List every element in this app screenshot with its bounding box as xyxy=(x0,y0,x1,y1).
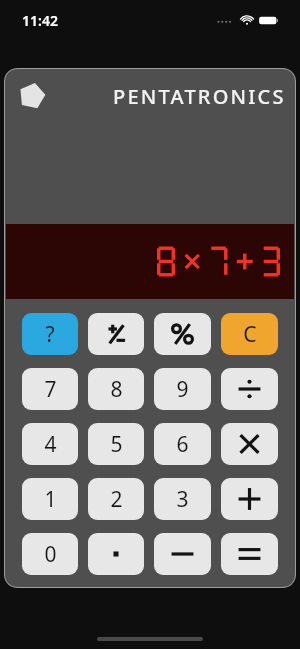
button[interactable]: Three xyxy=(154,478,211,520)
staticText: 3 xyxy=(176,485,189,514)
button[interactable]: Two xyxy=(88,478,144,520)
staticText: 4 xyxy=(44,430,57,459)
staticText: 8 xyxy=(110,375,123,404)
staticText: C xyxy=(243,320,257,349)
button[interactable]: Eight xyxy=(88,368,144,410)
staticText: 2 xyxy=(110,485,123,514)
staticText: 9 xyxy=(176,375,189,404)
staticText: 0 xyxy=(44,540,57,569)
staticText: PENTATRONICS xyxy=(113,83,286,110)
staticText: 6 xyxy=(176,430,189,459)
button[interactable]: Percent xyxy=(154,313,211,355)
button[interactable]: Decimal point xyxy=(88,533,144,575)
button[interactable]: Equals xyxy=(221,533,278,575)
button[interactable]: Nine xyxy=(154,368,211,410)
button[interactable]: Plus minus xyxy=(88,313,144,355)
button[interactable]: Seven xyxy=(22,368,78,410)
button[interactable]: Clear xyxy=(221,313,278,355)
staticText: 5 xyxy=(110,430,123,459)
button[interactable]: Divide xyxy=(221,368,278,410)
button[interactable]: Five xyxy=(88,423,144,465)
button[interactable]: Four xyxy=(22,423,78,465)
staticText: ? xyxy=(45,320,55,349)
other: Pentatronics logo xyxy=(18,82,46,110)
button[interactable]: Multiply xyxy=(221,423,278,465)
button[interactable]: Plus xyxy=(221,478,278,520)
staticText: 7 xyxy=(44,375,57,404)
staticText: 11:42 xyxy=(22,11,58,30)
button[interactable]: Help xyxy=(22,313,78,355)
button[interactable]: Six xyxy=(154,423,211,465)
staticText: 1 xyxy=(44,485,57,514)
button[interactable]: Zero xyxy=(22,533,78,575)
button[interactable]: One xyxy=(22,478,78,520)
button[interactable]: Minus xyxy=(154,533,211,575)
